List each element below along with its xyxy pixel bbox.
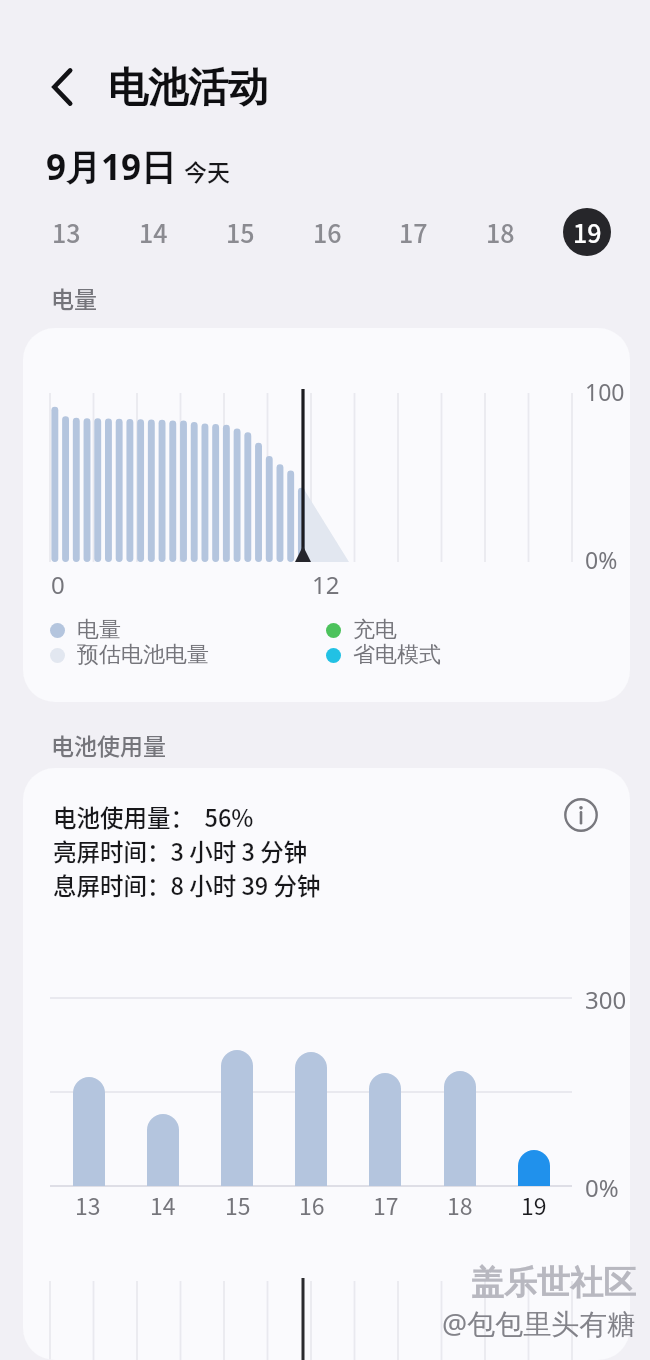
staticText: 17 [373,1188,399,1221]
staticText: 0% [585,1171,619,1204]
staticText: 充电 [353,616,397,644]
staticText: 盖乐世社区 [471,1262,636,1304]
button[interactable]: 18 [476,208,524,256]
staticText: 16 [313,214,342,250]
staticText: 9月19日 [46,143,177,191]
button[interactable]: 19 [563,208,611,256]
staticText: 电量 [77,616,121,644]
staticText: 13 [52,214,81,250]
staticText: 15 [226,214,255,250]
staticText: 14 [150,1188,176,1221]
staticText: 电量 [51,281,97,314]
button[interactable]: 15 [216,208,264,256]
staticText: 电池使用量 [51,728,166,761]
button[interactable]: Info [558,792,604,838]
staticText: 12 [312,568,340,601]
button[interactable]: Back [37,61,89,113]
button[interactable]: 17 [389,208,437,256]
button[interactable]: 13 [42,208,90,256]
staticText: 电池活动 [108,62,268,112]
button[interactable]: 14 [129,208,177,256]
button[interactable]: 16 [303,208,351,256]
staticText: 14 [139,214,168,250]
staticText: 电池使用量： 56% [53,800,254,834]
staticText: 息屏时间：8 小时 39 分钟 [53,868,321,902]
staticText: 19 [573,214,602,250]
staticText: 16 [299,1188,325,1221]
staticText: 100 [585,376,625,407]
staticText: 亮屏时间：3 小时 3 分钟 [53,834,308,868]
staticText: 13 [75,1188,101,1221]
staticText: 省电模式 [353,641,441,669]
staticText: 0% [585,544,618,575]
staticText: 18 [486,214,515,250]
staticText: 17 [399,214,428,250]
staticText: 15 [225,1188,251,1221]
staticText: 0 [51,568,65,601]
staticText: 18 [447,1188,473,1221]
staticText: 今天 [184,154,230,187]
staticText: 19 [521,1188,547,1221]
staticText: 预估电池电量 [77,641,209,669]
staticText: 300 [585,983,627,1016]
staticText: @包包里头有糖 [442,1304,636,1342]
